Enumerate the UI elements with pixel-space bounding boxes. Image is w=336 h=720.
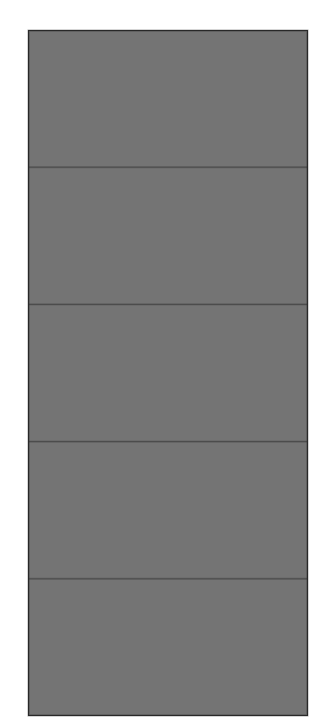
other: Media list <box>28 30 308 716</box>
button[interactable]: Item 1 <box>28 30 308 167</box>
button[interactable]: Item 4 <box>28 441 308 578</box>
button[interactable]: Item 2 <box>28 167 308 304</box>
button[interactable]: Item 3 <box>28 304 308 441</box>
button[interactable]: Item 5 <box>28 578 308 715</box>
